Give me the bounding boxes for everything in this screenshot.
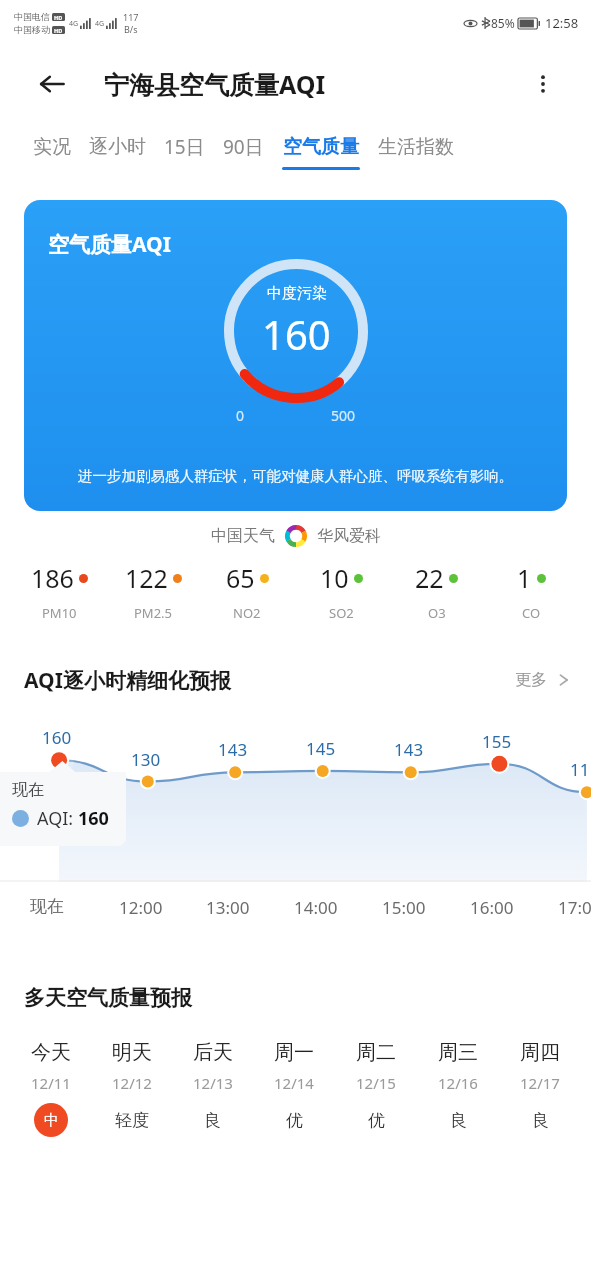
staticText: 良 bbox=[450, 1110, 467, 1131]
staticText: 15:00 bbox=[382, 896, 426, 919]
button[interactable]: 空气质量AQI bbox=[24, 200, 567, 511]
staticText: 65 bbox=[226, 561, 255, 595]
button[interactable]: 逐小时 bbox=[80, 122, 155, 176]
button[interactable]: 10 bbox=[294, 561, 389, 622]
staticText: 明天 bbox=[112, 1040, 152, 1065]
button[interactable]: Back bbox=[30, 62, 74, 106]
staticText: 宁海县空气质量AQI bbox=[104, 67, 326, 101]
staticText: 周二 bbox=[356, 1040, 396, 1065]
staticText: PM2.5 bbox=[134, 604, 173, 622]
staticText: 轻度 bbox=[115, 1110, 149, 1131]
button[interactable]: 65 bbox=[200, 561, 294, 622]
staticText: 周四 bbox=[520, 1040, 560, 1065]
button[interactable]: 今天 bbox=[10, 1040, 91, 1137]
staticText: HD bbox=[54, 14, 63, 21]
staticText: 实况 bbox=[33, 135, 71, 159]
button[interactable]: 90日 bbox=[214, 122, 273, 176]
staticText: 4G bbox=[69, 19, 79, 29]
staticText: 14:00 bbox=[294, 896, 338, 919]
staticText: 12/14 bbox=[274, 1073, 314, 1093]
staticText: 22 bbox=[415, 561, 444, 595]
button[interactable]: 22 bbox=[389, 561, 484, 622]
staticText: 中度污染 bbox=[267, 284, 327, 303]
staticText: 多天空气质量预报 bbox=[24, 985, 192, 1011]
staticText: 今天 bbox=[31, 1040, 71, 1065]
staticText: 后天 bbox=[193, 1040, 233, 1065]
button[interactable]: 周四 bbox=[499, 1040, 581, 1137]
button[interactable]: 后天 bbox=[172, 1040, 253, 1137]
button[interactable]: 周一 bbox=[253, 1040, 335, 1137]
button[interactable]: 空气质量 bbox=[273, 122, 369, 176]
button[interactable]: 生活指数 bbox=[369, 122, 463, 176]
staticText: 500 bbox=[331, 406, 356, 425]
staticText: 145 bbox=[306, 737, 336, 760]
staticText: HD bbox=[54, 27, 63, 34]
staticText: 现在 bbox=[30, 896, 64, 917]
staticText: 160 bbox=[262, 307, 331, 361]
staticText: 160 bbox=[42, 726, 72, 749]
button[interactable]: 实况 bbox=[24, 122, 80, 176]
staticText: 12/16 bbox=[438, 1073, 478, 1093]
staticText: 空气质量 bbox=[283, 135, 359, 159]
button[interactable]: 122 bbox=[106, 561, 200, 622]
staticText: 155 bbox=[482, 730, 512, 753]
staticText: 周三 bbox=[438, 1040, 478, 1065]
staticText: 优 bbox=[368, 1110, 385, 1131]
staticText: 160 bbox=[78, 806, 109, 831]
button[interactable]: 周二 bbox=[335, 1040, 417, 1137]
staticText: 4G bbox=[95, 19, 105, 29]
staticText: CO bbox=[522, 604, 541, 622]
staticText: 1 bbox=[517, 561, 532, 595]
staticText: 15日 bbox=[164, 134, 205, 160]
button[interactable]: 1 bbox=[484, 561, 579, 622]
staticText: 11 bbox=[570, 758, 590, 781]
staticText: NO2 bbox=[233, 604, 261, 622]
staticText: 空气质量AQI bbox=[48, 230, 171, 259]
staticText: PM10 bbox=[42, 604, 77, 622]
staticText: SO2 bbox=[329, 604, 354, 622]
staticText: 130 bbox=[131, 748, 161, 771]
staticText: 生活指数 bbox=[378, 135, 454, 159]
staticText: 143 bbox=[218, 738, 248, 761]
staticText: 中国电信 bbox=[14, 11, 50, 22]
staticText: 12:58 bbox=[545, 14, 579, 32]
staticText: O3 bbox=[428, 604, 446, 622]
staticText: 143 bbox=[394, 738, 424, 761]
button[interactable]: 明天 bbox=[91, 1040, 172, 1137]
staticText: 中 bbox=[44, 1111, 59, 1130]
staticText: 85% bbox=[491, 15, 515, 31]
staticText: 中国天气 bbox=[211, 526, 275, 546]
button[interactable]: 15日 bbox=[155, 122, 214, 176]
staticText: 10 bbox=[320, 561, 349, 595]
staticText: B/s bbox=[124, 23, 138, 35]
staticText: 13:00 bbox=[206, 896, 250, 919]
button[interactable]: 更多 bbox=[515, 670, 571, 690]
staticText: AQI逐小时精细化预报 bbox=[24, 666, 231, 695]
staticText: 0 bbox=[236, 406, 245, 425]
staticText: 12/12 bbox=[112, 1073, 152, 1093]
staticText: AQI: bbox=[37, 806, 78, 831]
staticText: 中国移动 bbox=[14, 24, 50, 35]
staticText: 12/11 bbox=[31, 1073, 71, 1093]
staticText: 12/13 bbox=[193, 1073, 233, 1093]
staticText: 186 bbox=[31, 561, 74, 595]
staticText: 12/15 bbox=[356, 1073, 396, 1093]
staticText: 良 bbox=[532, 1110, 549, 1131]
staticText: 90日 bbox=[223, 134, 264, 160]
button[interactable]: 186 bbox=[12, 561, 106, 622]
staticText: 16:00 bbox=[470, 896, 514, 919]
staticText: 122 bbox=[125, 561, 168, 595]
button[interactable]: More options bbox=[521, 62, 565, 106]
staticText: 更多 bbox=[515, 670, 547, 690]
staticText: 华风爱科 bbox=[317, 526, 381, 546]
staticText: 良 bbox=[204, 1110, 221, 1131]
staticText: 周一 bbox=[274, 1040, 314, 1065]
staticText: 逐小时 bbox=[89, 135, 146, 159]
button[interactable]: 周三 bbox=[417, 1040, 499, 1137]
staticText: 12:00 bbox=[119, 896, 163, 919]
staticText: 现在 bbox=[12, 780, 44, 800]
staticText: 117 bbox=[123, 11, 139, 23]
staticText: 17:0 bbox=[558, 896, 591, 919]
staticText: 优 bbox=[286, 1110, 303, 1131]
staticText: 12/17 bbox=[520, 1073, 560, 1093]
